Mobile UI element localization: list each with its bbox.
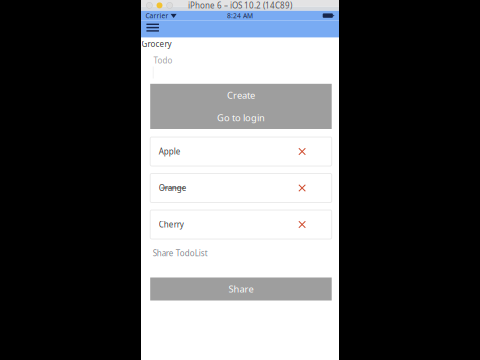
- staticText: Carrier: [145, 11, 168, 20]
- button[interactable]: Create: [150, 84, 332, 106]
- staticText: Go to login: [217, 111, 265, 124]
- staticText: 8:24 AM: [227, 11, 253, 20]
- staticText: Cherry: [159, 219, 184, 230]
- button[interactable]: Delete Orange: [293, 176, 311, 200]
- staticText: Apple: [159, 146, 181, 157]
- staticText: Share TodoList: [153, 248, 208, 258]
- staticText: iPhone 6 – iOS 10.2 (14C89): [188, 0, 292, 11]
- staticText: Orange: [159, 183, 187, 193]
- staticText: Create: [227, 89, 255, 101]
- button[interactable]: Menu: [141, 20, 159, 32]
- button[interactable]: Delete Apple: [293, 139, 311, 163]
- button[interactable]: Go to login: [150, 106, 332, 129]
- staticText: Todo: [153, 55, 172, 66]
- button[interactable]: Delete Cherry: [293, 212, 311, 236]
- staticText: Grocery: [142, 39, 172, 49]
- staticText: Share: [228, 283, 253, 295]
- button[interactable]: Share: [150, 277, 332, 300]
